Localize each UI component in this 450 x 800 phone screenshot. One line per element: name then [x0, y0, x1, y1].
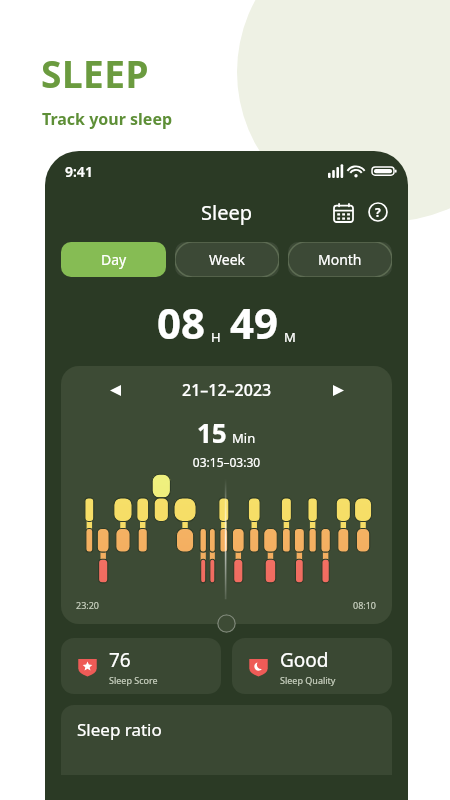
button[interactable]: Day — [61, 242, 166, 277]
button[interactable]: Previous day — [103, 378, 127, 402]
staticText: Min — [232, 429, 256, 447]
staticText: 76 — [109, 647, 131, 673]
staticText: 23:20 — [76, 599, 100, 611]
staticText: M — [284, 328, 296, 346]
button[interactable]: Calendar — [330, 199, 356, 225]
staticText: Track your sleep — [42, 108, 173, 130]
staticText: Day — [101, 250, 127, 269]
staticText: 9:41 — [65, 162, 93, 181]
button[interactable]: Expand chart — [217, 614, 236, 633]
staticText: Sleep Quality — [280, 674, 336, 686]
button[interactable]: Next day — [326, 378, 350, 402]
button[interactable]: Help — [365, 199, 391, 225]
button[interactable]: 76 — [61, 638, 221, 694]
staticText: Sleep — [201, 199, 252, 226]
staticText: H — [211, 328, 221, 346]
staticText: 03:15–03:30 — [61, 454, 392, 470]
staticText: Week — [209, 250, 246, 269]
staticText: 15 — [197, 415, 227, 450]
button[interactable]: Good — [232, 638, 392, 694]
staticText: Month — [318, 250, 362, 269]
staticText: 49 — [230, 294, 279, 351]
staticText: Sleep ratio — [77, 718, 162, 741]
button[interactable]: Sleep ratio — [61, 705, 392, 775]
staticText: 08 — [157, 294, 206, 351]
button[interactable]: Month — [288, 242, 392, 277]
staticText: 21–12–2023 — [182, 379, 272, 401]
staticText: 08:10 — [353, 599, 377, 611]
staticText: SLEEP — [41, 48, 149, 98]
staticText: Sleep Score — [109, 674, 158, 686]
staticText: ? — [375, 204, 381, 220]
staticText: Good — [280, 647, 329, 673]
button[interactable]: Week — [175, 242, 279, 277]
